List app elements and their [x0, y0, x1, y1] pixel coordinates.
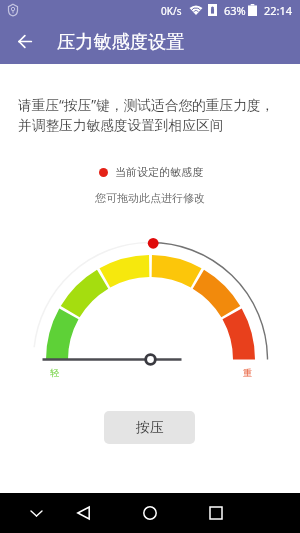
button[interactable]: Hide [18, 493, 54, 533]
staticText: 请重压“按压”键，测试适合您的重压力度， 并调整压力敏感度设置到相应区间 [18, 95, 275, 134]
staticText: 压力敏感度设置 [57, 30, 185, 53]
button[interactable]: Back [4, 21, 45, 62]
staticText: 按压 [136, 419, 164, 437]
staticText: 您可拖动此点进行修改 [95, 191, 205, 205]
staticText: 当前设定的敏感度 [115, 165, 203, 179]
staticText: 重 [243, 367, 252, 378]
button[interactable]: 按压 [104, 411, 195, 444]
button[interactable]: Back [65, 493, 101, 533]
staticText: 轻 [50, 367, 59, 378]
button[interactable]: Recent apps [198, 493, 234, 533]
button[interactable]: Home [132, 493, 168, 533]
staticText: 63% [224, 3, 246, 18]
staticText: 22:14 [264, 3, 293, 18]
staticText: 0K/s [161, 4, 182, 18]
